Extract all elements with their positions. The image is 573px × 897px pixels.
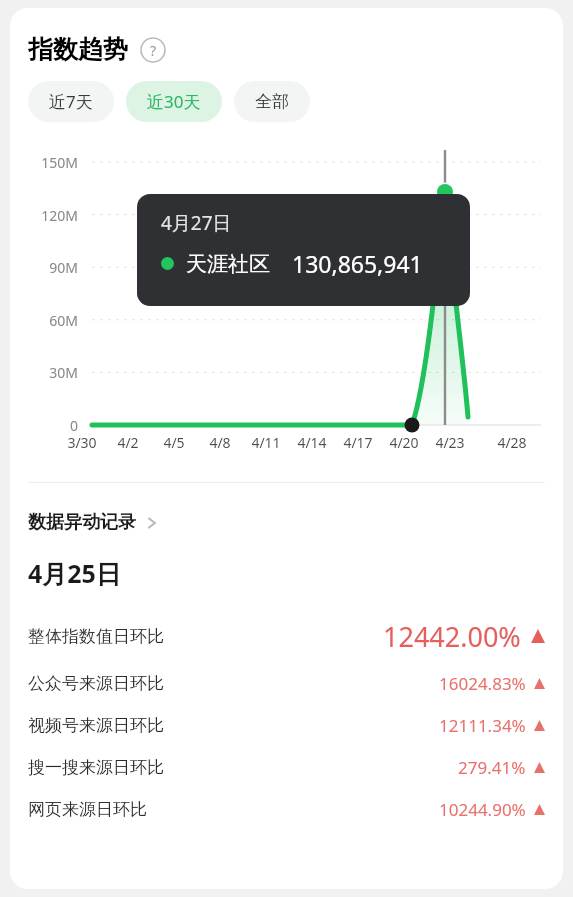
- button[interactable]: 搜一搜来源日环比: [10, 746, 563, 788]
- button[interactable]: 视频号来源日环比: [10, 704, 563, 746]
- staticText: 12111.34%: [439, 714, 526, 737]
- staticText: 120M: [18, 206, 78, 225]
- staticText: 数据异动记录: [28, 511, 136, 534]
- staticText: 0: [18, 416, 78, 435]
- staticText: 30M: [18, 363, 78, 382]
- staticText: 60M: [18, 311, 78, 330]
- staticText: 279.41%: [458, 756, 526, 779]
- staticText: 10244.90%: [439, 798, 526, 821]
- staticText: 4/8: [196, 433, 244, 452]
- staticText: 视频号来源日环比: [28, 715, 164, 736]
- staticText: 网页来源日环比: [28, 799, 147, 820]
- staticText: 整体指数值日环比: [28, 626, 164, 647]
- staticText: 4/20: [380, 433, 428, 452]
- staticText: 4月27日: [161, 210, 232, 236]
- button[interactable]: 网页来源日环比: [10, 788, 563, 830]
- staticText: ?: [150, 41, 157, 60]
- button[interactable]: 公众号来源日环比: [10, 662, 563, 704]
- staticText: 12442.00%: [383, 618, 521, 655]
- staticText: 全部: [255, 91, 289, 112]
- button[interactable]: 帮助说明: [140, 37, 166, 63]
- staticText: 3/30: [58, 433, 106, 452]
- staticText: 90M: [18, 258, 78, 277]
- staticText: 4/11: [242, 433, 290, 452]
- staticText: 4月25日: [28, 556, 121, 590]
- staticText: 16024.83%: [439, 672, 526, 695]
- staticText: 公众号来源日环比: [28, 673, 164, 694]
- button[interactable]: 近30天: [126, 81, 222, 122]
- staticText: 4/14: [288, 433, 336, 452]
- staticText: 4/17: [334, 433, 382, 452]
- staticText: 130,865,941: [292, 248, 423, 279]
- button[interactable]: 近7天: [28, 81, 114, 122]
- staticText: 4/5: [150, 433, 198, 452]
- button[interactable]: 数据异动记录: [28, 511, 160, 534]
- staticText: 近7天: [49, 90, 93, 113]
- button[interactable]: 整体指数值日环比: [10, 610, 563, 662]
- staticText: 4/2: [104, 433, 152, 452]
- staticText: 指数趋势: [28, 34, 128, 65]
- staticText: 搜一搜来源日环比: [28, 757, 164, 778]
- staticText: 4/28: [488, 433, 536, 452]
- staticText: 150M: [18, 153, 78, 172]
- staticText: 天涯社区: [186, 251, 270, 277]
- staticText: 近30天: [147, 90, 201, 113]
- staticText: 4/23: [426, 433, 474, 452]
- button[interactable]: 全部: [234, 81, 310, 122]
